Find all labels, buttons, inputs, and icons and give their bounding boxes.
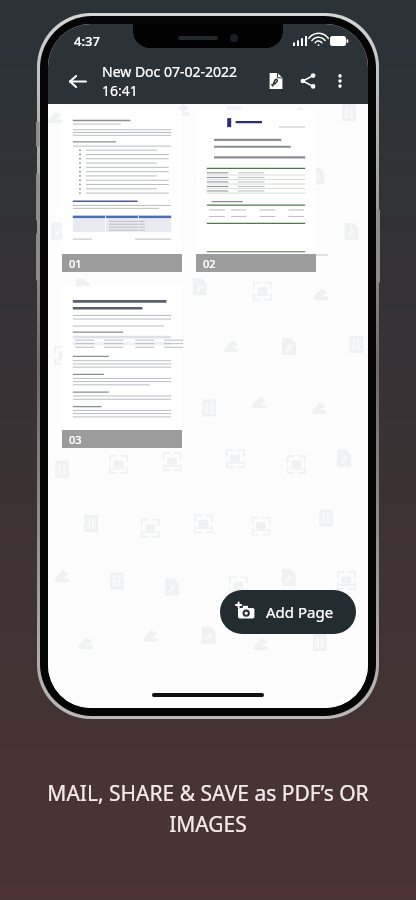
button[interactable]: 02	[196, 110, 316, 272]
staticText: Add Page	[266, 602, 334, 622]
button[interactable]: 03	[62, 286, 182, 448]
button[interactable]: Share	[292, 65, 324, 97]
button[interactable]: 01	[62, 110, 182, 272]
button[interactable]: Export as PDF	[260, 65, 292, 97]
staticText: New Doc 07-02-2022 16:41	[102, 62, 260, 100]
staticText: 01	[69, 256, 82, 271]
staticText: 4:37	[74, 32, 100, 50]
staticText: 03	[69, 432, 82, 447]
button[interactable]: More options	[324, 65, 356, 97]
staticText: MAIL, SHARE & SAVE as PDF’s OR IMAGES	[47, 779, 369, 838]
staticText: 02	[203, 256, 216, 271]
button[interactable]: Back	[60, 64, 94, 98]
button[interactable]: Add Page	[220, 590, 356, 634]
